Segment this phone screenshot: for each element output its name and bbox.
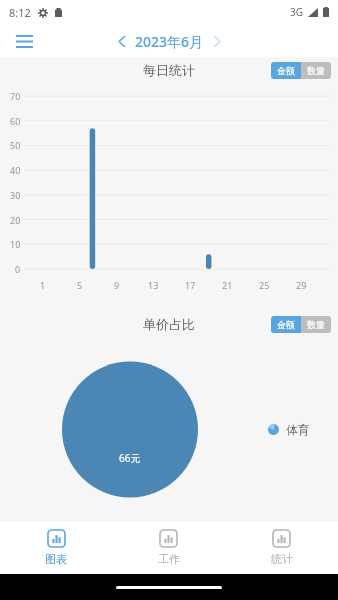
staticText: 17 (185, 279, 196, 291)
staticText: 9 (114, 279, 120, 291)
staticText: 8:12 (9, 5, 31, 20)
button[interactable]: 金额 (271, 316, 301, 333)
staticText: 金额 (277, 65, 295, 76)
button[interactable]: 体育 (268, 422, 310, 437)
button[interactable]: 金额 (271, 62, 301, 79)
staticText: 单价占比 (143, 316, 195, 332)
staticText: 29 (296, 279, 307, 291)
staticText: 30 (10, 189, 21, 201)
button[interactable]: Menu (10, 27, 38, 55)
button[interactable]: 统计 (225, 522, 338, 574)
staticText: 21 (222, 279, 233, 291)
staticText: 70 (10, 90, 21, 102)
staticText: 1 (40, 279, 46, 291)
staticText: 13 (148, 279, 159, 291)
staticText: 60 (10, 115, 21, 127)
staticText: 66元 (119, 451, 141, 465)
button[interactable]: 数量 (301, 62, 331, 79)
staticText: 工作 (158, 552, 180, 566)
staticText: 数量 (307, 65, 325, 76)
staticText: 25 (259, 279, 270, 291)
staticText: 5 (77, 279, 83, 291)
staticText: 图表 (45, 552, 67, 566)
staticText: 每日统计 (143, 62, 195, 78)
staticText: 体育 (286, 422, 310, 437)
staticText: 50 (10, 139, 21, 151)
button[interactable]: Previous month (112, 31, 132, 51)
staticText: 3G (290, 5, 303, 19)
staticText: 统计 (271, 552, 293, 566)
staticText: 10 (10, 238, 21, 250)
staticText: 数量 (307, 319, 325, 330)
staticText: 2023年6月 (135, 32, 204, 51)
staticText: 40 (10, 164, 21, 176)
staticText: 0 (15, 263, 21, 275)
staticText: 金额 (277, 319, 295, 330)
button[interactable]: 图表 (0, 522, 112, 574)
button[interactable]: Next month (207, 31, 227, 51)
staticText: 20 (10, 214, 21, 226)
button[interactable]: 工作 (112, 522, 225, 574)
button[interactable]: 数量 (301, 316, 331, 333)
